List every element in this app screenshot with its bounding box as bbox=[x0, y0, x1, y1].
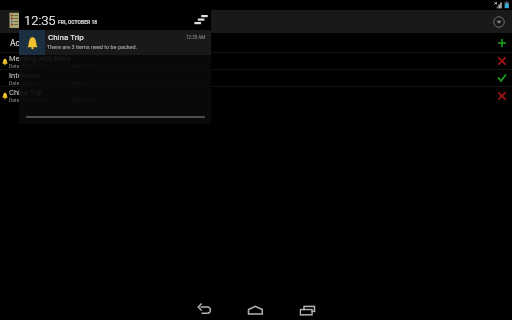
staticText: Date: 2013-10-01 bbox=[9, 97, 72, 103]
button[interactable]: China Trip bbox=[19, 30, 211, 55]
staticText: China Trip bbox=[9, 88, 43, 97]
other: Done bbox=[492, 70, 512, 86]
other: Add activity bbox=[492, 33, 512, 52]
button[interactable]: Activities bbox=[0, 33, 512, 52]
staticText: China Trip bbox=[48, 33, 84, 42]
button[interactable]: Meeting with Boss bbox=[0, 53, 512, 69]
button[interactable]: Back bbox=[191, 300, 219, 320]
staticText: Activities bbox=[10, 38, 492, 48]
button[interactable]: Home bbox=[241, 300, 269, 320]
button[interactable]: Expand bbox=[492, 15, 505, 28]
other: Delete bbox=[492, 53, 512, 69]
staticText: Date: 2013-10-18 bbox=[9, 80, 72, 86]
staticText: There are 3 items need to be packed. bbox=[47, 44, 138, 50]
staticText: Date: 2013-10-01 bbox=[9, 63, 72, 69]
button[interactable]: Quick settings bbox=[193, 14, 208, 25]
staticText: Interview bbox=[9, 71, 40, 80]
button[interactable]: Recents bbox=[293, 300, 321, 320]
staticText: 12:35 AM bbox=[186, 35, 206, 40]
staticText: 12:35 bbox=[24, 13, 56, 28]
other: Delete bbox=[492, 87, 512, 104]
staticText: FRI, OCTOBER 18 bbox=[58, 19, 98, 25]
button[interactable]: Interview bbox=[0, 70, 512, 86]
staticText: Meeting with Boss bbox=[9, 54, 71, 63]
button[interactable]: China Trip bbox=[0, 87, 512, 104]
